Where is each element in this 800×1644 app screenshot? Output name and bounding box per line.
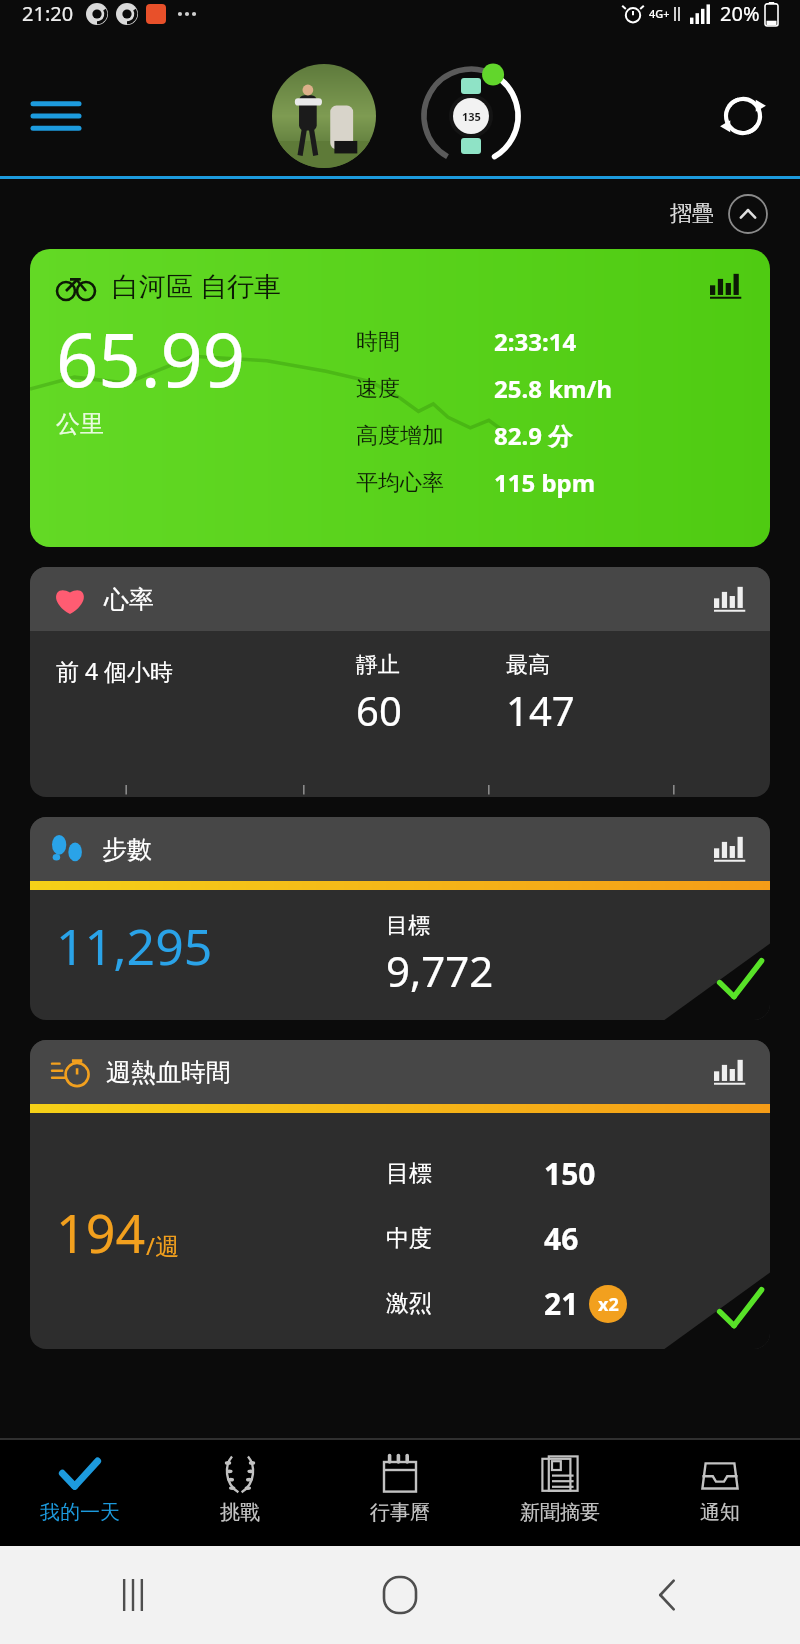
staticText: 9,772: [386, 942, 494, 999]
staticText: 公里: [56, 409, 104, 439]
staticText: 摺疊: [670, 200, 714, 228]
staticText: 挑戰: [220, 1500, 260, 1525]
staticText: 65.99: [56, 308, 246, 409]
button[interactable]: Back: [533, 1546, 800, 1644]
staticText: 步數: [102, 834, 152, 865]
staticText: 147: [506, 683, 575, 737]
staticText: 135: [462, 109, 481, 124]
button[interactable]: Recents: [0, 1546, 266, 1644]
staticText: 194: [56, 1197, 146, 1268]
button[interactable]: 週熱血時間: [30, 1040, 770, 1349]
staticText: 2:33:14: [494, 325, 577, 358]
staticText: 心率: [104, 584, 154, 615]
staticText: 平均心率: [356, 469, 494, 497]
button[interactable]: 行事曆: [320, 1440, 480, 1546]
staticText: 150: [544, 1153, 596, 1194]
staticText: 高度增加: [356, 422, 494, 450]
staticText: 白河區 自行車: [112, 267, 282, 304]
staticText: 4G+: [649, 6, 670, 21]
button[interactable]: 我的一天: [0, 1440, 160, 1546]
staticText: 我的一天: [40, 1500, 120, 1525]
staticText: 21: [544, 1283, 579, 1324]
staticText: 115 bpm: [494, 466, 596, 499]
staticText: 時間: [356, 328, 494, 356]
button[interactable]: 白河區 自行車: [30, 249, 770, 547]
button[interactable]: 通知: [640, 1440, 800, 1546]
button[interactable]: Menu: [28, 88, 84, 144]
button[interactable]: 新聞摘要: [480, 1440, 640, 1546]
staticText: 82.9 分: [494, 419, 573, 452]
staticText: 60: [356, 683, 402, 737]
staticText: 11,295: [56, 912, 386, 980]
staticText: 20%: [720, 0, 760, 27]
staticText: 激烈: [386, 1289, 544, 1318]
button[interactable]: 心率: [30, 567, 770, 797]
staticText: 中度: [386, 1224, 544, 1253]
staticText: 46: [544, 1218, 579, 1259]
staticText: 速度: [356, 375, 494, 403]
button[interactable]: Home: [266, 1546, 533, 1644]
staticText: 通知: [700, 1500, 740, 1525]
staticText: 週熱血時間: [106, 1057, 231, 1088]
staticText: 目標: [386, 1159, 544, 1188]
staticText: 25.8 km/h: [494, 372, 613, 405]
staticText: 靜止: [356, 651, 400, 679]
staticText: 前 4 個小時: [56, 655, 356, 686]
staticText: 目標: [386, 912, 430, 940]
staticText: /週: [146, 1229, 179, 1262]
button[interactable]: 步數: [30, 817, 770, 1020]
button[interactable]: Profile: [272, 64, 376, 168]
staticText: 21:20: [22, 0, 74, 27]
staticText: 新聞摘要: [520, 1500, 600, 1525]
staticText: x2: [598, 1292, 619, 1317]
button[interactable]: Device: [416, 61, 526, 171]
button[interactable]: 摺疊: [664, 188, 774, 240]
button[interactable]: 挑戰: [160, 1440, 320, 1546]
staticText: 最高: [506, 651, 550, 679]
button[interactable]: Sync: [714, 87, 772, 145]
staticText: 行事曆: [370, 1500, 430, 1525]
